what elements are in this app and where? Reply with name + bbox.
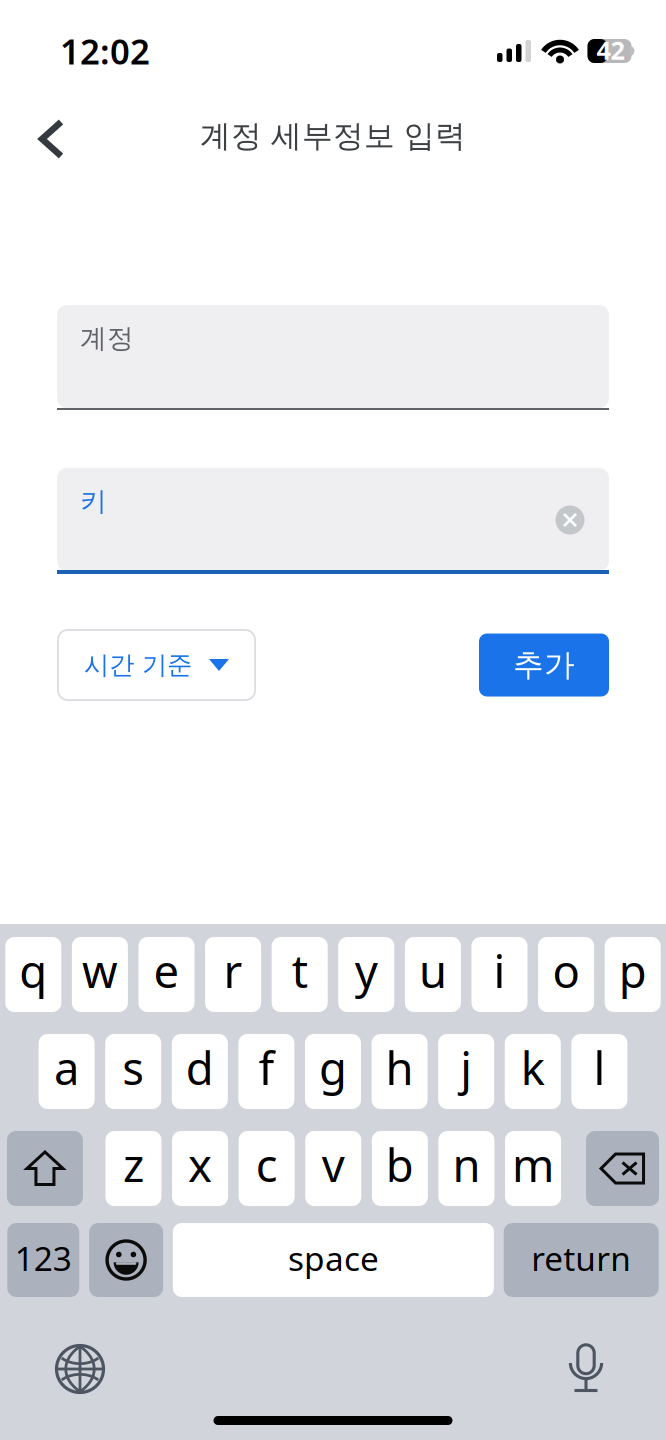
staticText: 42	[596, 33, 624, 67]
staticText: 키	[80, 485, 107, 518]
button[interactable]: o	[538, 937, 594, 1012]
button[interactable]: Back	[18, 101, 80, 171]
staticText: space	[288, 1236, 379, 1280]
staticText: m	[512, 1134, 554, 1195]
staticText: l	[593, 1037, 605, 1098]
staticText: a	[54, 1037, 79, 1098]
button[interactable]: c	[239, 1131, 295, 1206]
staticText: y	[355, 940, 378, 1001]
staticText: q	[19, 940, 47, 1001]
button[interactable]: s	[105, 1034, 161, 1109]
staticText: s	[122, 1037, 144, 1098]
button[interactable]: 시간 기준	[57, 629, 256, 701]
staticText: u	[419, 940, 447, 1001]
button[interactable]: Change keyboard	[42, 1335, 118, 1403]
button[interactable]: i	[471, 937, 527, 1012]
staticText: 계정	[80, 322, 134, 355]
button[interactable]: 123	[7, 1223, 79, 1297]
staticText: w	[82, 940, 118, 1001]
button[interactable]: j	[438, 1034, 494, 1109]
button[interactable]: m	[505, 1131, 561, 1206]
staticText: 시간 기준	[84, 649, 192, 680]
button[interactable]: e	[138, 937, 194, 1012]
staticText: d	[186, 1037, 214, 1098]
button[interactable]: Clear text	[546, 496, 594, 544]
staticText: 추가	[513, 646, 575, 684]
staticText: r	[224, 940, 243, 1001]
button[interactable]: u	[405, 937, 461, 1012]
staticText: j	[460, 1037, 472, 1098]
staticText: h	[386, 1037, 414, 1098]
staticText: return	[531, 1236, 631, 1280]
button[interactable]: Delete	[586, 1131, 659, 1206]
button[interactable]: z	[105, 1131, 161, 1206]
button[interactable]: p	[605, 937, 661, 1012]
staticText: t	[292, 940, 308, 1001]
staticText: p	[619, 940, 647, 1001]
button[interactable]: v	[305, 1131, 361, 1206]
button[interactable]: w	[72, 937, 128, 1012]
staticText: v	[322, 1134, 345, 1195]
button[interactable]: g	[305, 1034, 361, 1109]
staticText: 12:02	[60, 28, 150, 74]
button[interactable]: f	[238, 1034, 294, 1109]
button[interactable]: Shift	[7, 1131, 83, 1206]
staticText: c	[256, 1134, 278, 1195]
button[interactable]: h	[372, 1034, 428, 1109]
staticText: f	[258, 1037, 274, 1098]
button[interactable]: d	[172, 1034, 228, 1109]
button[interactable]: x	[172, 1131, 228, 1206]
button[interactable]: l	[571, 1034, 627, 1109]
staticText: i	[493, 940, 505, 1001]
staticText: 123	[15, 1236, 72, 1280]
staticText: k	[521, 1037, 545, 1098]
button[interactable]: space	[173, 1223, 494, 1297]
staticText: 계정 세부정보 입력	[200, 117, 466, 155]
button[interactable]: t	[272, 937, 328, 1012]
button[interactable]: b	[372, 1131, 428, 1206]
button[interactable]: 추가	[479, 633, 609, 696]
button[interactable]: q	[5, 937, 61, 1012]
button[interactable]: n	[438, 1131, 494, 1206]
staticText: g	[319, 1037, 347, 1098]
staticText: e	[153, 940, 179, 1001]
button[interactable]: r	[205, 937, 261, 1012]
staticText: z	[123, 1134, 144, 1195]
button[interactable]: a	[39, 1034, 95, 1109]
button[interactable]: k	[505, 1034, 561, 1109]
staticText: o	[553, 940, 580, 1001]
button[interactable]: return	[504, 1223, 659, 1297]
staticText: x	[188, 1134, 212, 1195]
staticText: n	[452, 1134, 480, 1195]
staticText: b	[386, 1134, 414, 1195]
button[interactable]: y	[338, 937, 394, 1012]
button[interactable]: Dictate	[548, 1335, 624, 1403]
button[interactable]: Emoji	[89, 1223, 163, 1297]
